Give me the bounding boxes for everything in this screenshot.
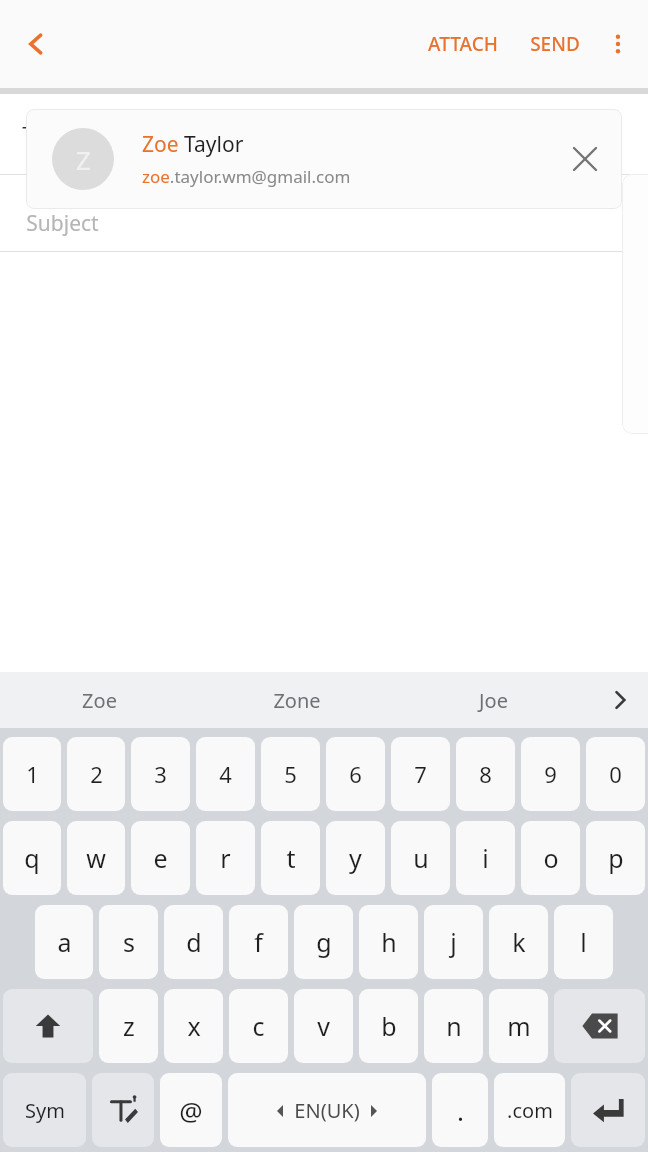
- button[interactable]: 6: [326, 737, 385, 811]
- staticText: Zoe Taylor: [142, 130, 244, 159]
- button[interactable]: More options: [592, 18, 644, 70]
- button[interactable]: 8: [456, 737, 515, 811]
- button[interactable]: v: [294, 989, 353, 1063]
- staticText: p: [608, 841, 624, 875]
- staticText: y: [349, 841, 362, 875]
- button[interactable]: m: [489, 989, 548, 1063]
- button[interactable]: 5: [261, 737, 320, 811]
- staticText: o: [543, 841, 559, 875]
- button[interactable]: b: [359, 989, 418, 1063]
- button[interactable]: q: [3, 821, 61, 895]
- button[interactable]: 9: [521, 737, 580, 811]
- button[interactable]: n: [424, 989, 483, 1063]
- button[interactable]: Handwriting: [92, 1073, 154, 1147]
- staticText: s: [123, 925, 135, 959]
- staticText: b: [381, 1009, 397, 1043]
- staticText: Zoe: [82, 687, 117, 714]
- button[interactable]: Sym: [3, 1073, 86, 1147]
- staticText: x: [187, 1009, 201, 1043]
- button[interactable]: 4: [196, 737, 255, 811]
- button[interactable]: Back: [8, 16, 64, 72]
- button[interactable]: ATTACH: [416, 17, 510, 71]
- staticText: e: [153, 841, 168, 875]
- staticText: j: [450, 925, 457, 959]
- button[interactable]: w: [67, 821, 125, 895]
- staticText: 9: [544, 759, 557, 789]
- button[interactable]: Zone: [198, 672, 395, 728]
- staticText: zoe.taylor.wm@gmail.com: [142, 165, 351, 188]
- button[interactable]: g: [294, 905, 353, 979]
- button[interactable]: SEND: [518, 17, 592, 71]
- staticText: l: [580, 925, 587, 959]
- button[interactable]: Joe: [395, 672, 592, 728]
- staticText: Subject: [26, 209, 99, 238]
- button[interactable]: e: [131, 821, 190, 895]
- staticText: Zone: [273, 687, 321, 714]
- button[interactable]: s: [99, 905, 158, 979]
- staticText: 8: [479, 759, 492, 789]
- staticText: @: [179, 1093, 203, 1128]
- button[interactable]: More suggestions: [592, 672, 648, 728]
- staticText: h: [381, 925, 397, 959]
- button[interactable]: c: [229, 989, 288, 1063]
- button[interactable]: @: [160, 1073, 222, 1147]
- staticText: .com: [507, 1097, 553, 1124]
- staticText: 7: [414, 759, 427, 789]
- staticText: To: [22, 121, 43, 147]
- staticText: z: [123, 1009, 135, 1043]
- staticText: ATTACH: [428, 31, 498, 57]
- button[interactable]: l: [554, 905, 613, 979]
- button[interactable]: .com: [494, 1073, 565, 1147]
- staticText: w: [86, 841, 106, 875]
- staticText: 3: [154, 759, 167, 789]
- button[interactable]: Subject: [0, 195, 648, 251]
- button[interactable]: 3: [131, 737, 190, 811]
- staticText: Z: [76, 142, 91, 177]
- staticText: 4: [219, 759, 232, 789]
- button[interactable]: Expand: [584, 108, 636, 160]
- button[interactable]: x: [164, 989, 223, 1063]
- staticText: i: [482, 841, 489, 875]
- button[interactable]: f: [229, 905, 288, 979]
- staticText: 6: [349, 759, 362, 789]
- button[interactable]: Zoe: [0, 672, 198, 728]
- button[interactable]: a: [35, 905, 93, 979]
- button[interactable]: Shift: [3, 989, 93, 1063]
- button[interactable]: Backspace: [554, 989, 645, 1063]
- button[interactable]: Z: [26, 109, 622, 209]
- button[interactable]: Enter: [571, 1073, 645, 1147]
- button[interactable]: z: [99, 989, 158, 1063]
- button[interactable]: k: [489, 905, 548, 979]
- staticText: g: [316, 925, 332, 959]
- staticText: a: [57, 925, 72, 959]
- staticText: c: [252, 1009, 265, 1043]
- button[interactable]: i: [456, 821, 515, 895]
- button[interactable]: 2: [67, 737, 125, 811]
- staticText: q: [24, 841, 40, 875]
- staticText: Zoe: [104, 120, 141, 149]
- staticText: u: [413, 841, 429, 875]
- staticText: 2: [90, 759, 103, 789]
- button[interactable]: h: [359, 905, 418, 979]
- button[interactable]: p: [586, 821, 645, 895]
- button[interactable]: o: [521, 821, 580, 895]
- button[interactable]: j: [424, 905, 483, 979]
- staticText: d: [186, 925, 202, 959]
- staticText: Joe: [479, 687, 508, 714]
- button[interactable]: r: [196, 821, 255, 895]
- button[interactable]: Remove recipient: [558, 132, 612, 186]
- button[interactable]: u: [391, 821, 450, 895]
- button[interactable]: Add recipient: [540, 112, 584, 156]
- staticText: .: [457, 1093, 464, 1128]
- button[interactable]: Space: [228, 1073, 426, 1147]
- staticText: n: [446, 1009, 462, 1043]
- button[interactable]: 0: [586, 737, 645, 811]
- button[interactable]: 1: [3, 737, 61, 811]
- button[interactable]: 7: [391, 737, 450, 811]
- staticText: t: [286, 841, 296, 875]
- button[interactable]: d: [164, 905, 223, 979]
- button[interactable]: t: [261, 821, 320, 895]
- button[interactable]: .: [432, 1073, 488, 1147]
- staticText: Sym: [25, 1097, 65, 1124]
- button[interactable]: y: [326, 821, 385, 895]
